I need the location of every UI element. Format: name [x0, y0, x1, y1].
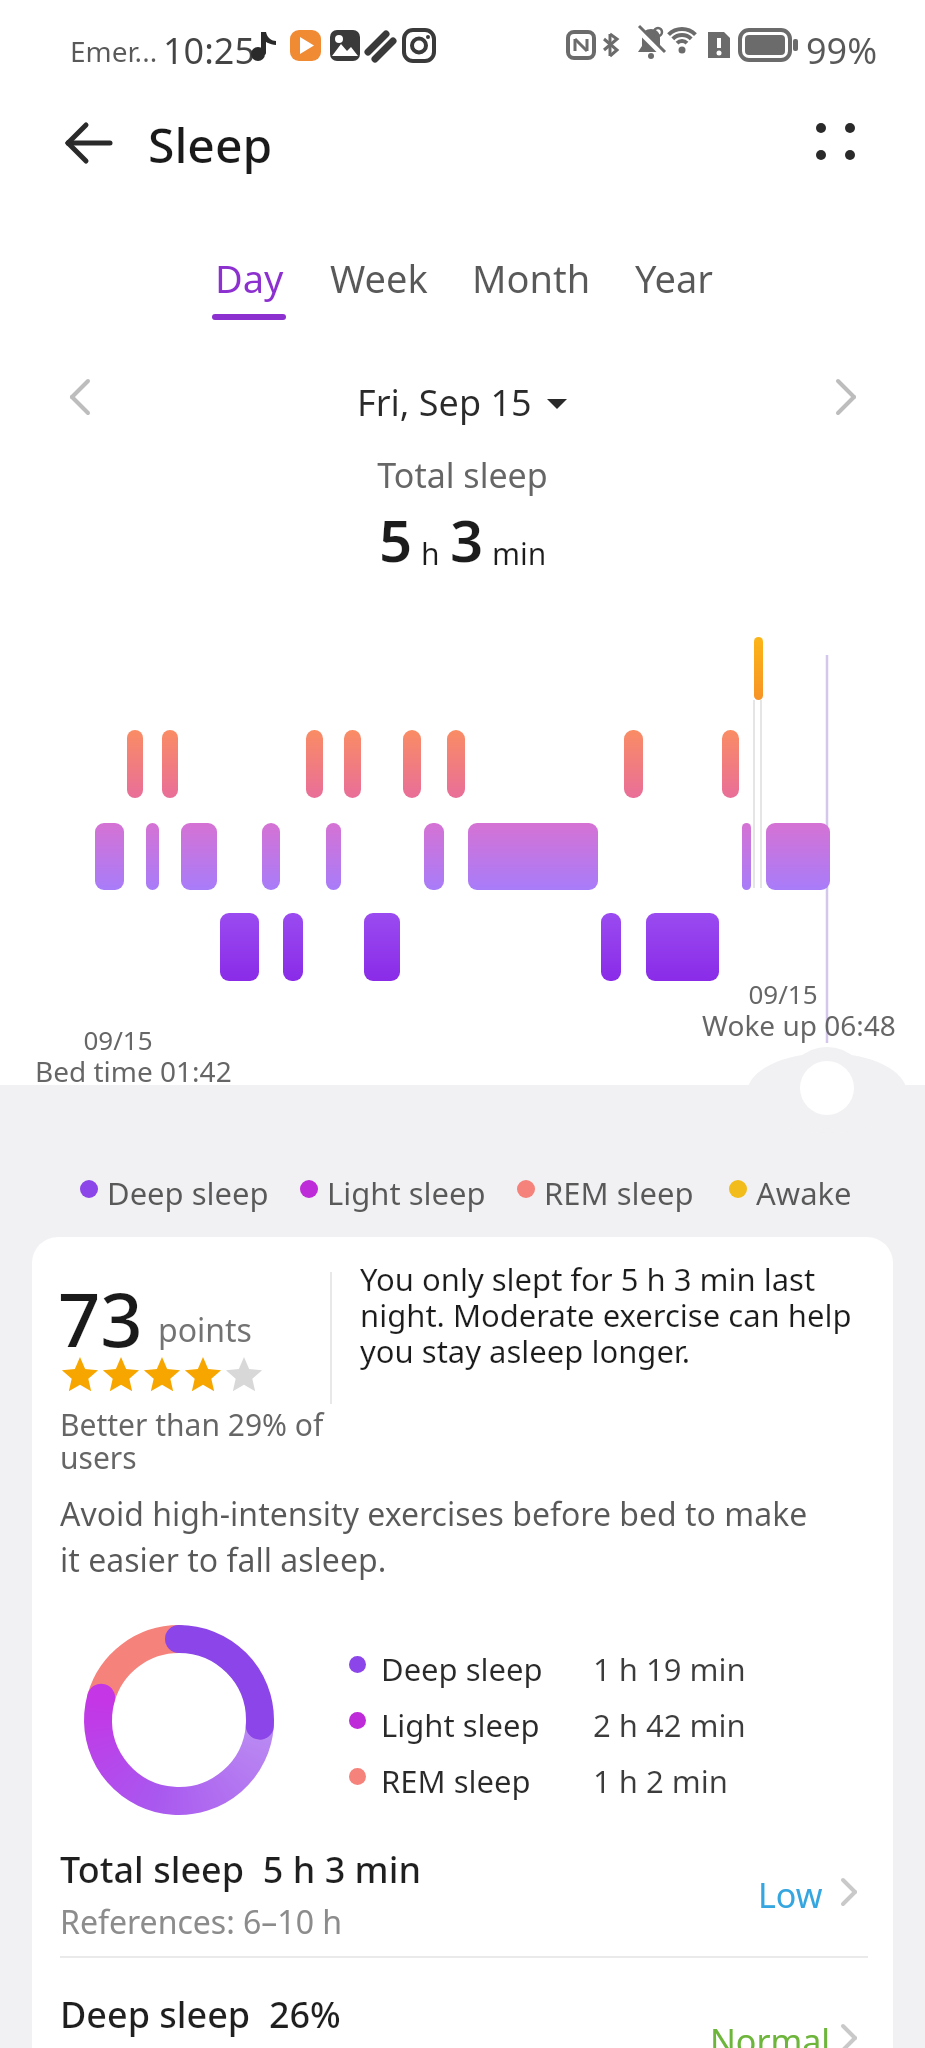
button[interactable]: [40, 1840, 885, 1950]
staticText: Emer...: [70, 32, 158, 70]
staticText: 2 h 42 min: [593, 1704, 746, 1746]
staticText: Avoid high-intensity exercises before be…: [60, 1492, 808, 1581]
button[interactable]: [40, 1975, 885, 2048]
button[interactable]: Day: [212, 252, 286, 320]
staticText: 1 h 2 min: [593, 1760, 728, 1802]
staticText: You only slept for 5 h 3 min last night.…: [360, 1258, 852, 1372]
staticText: 99%: [806, 26, 878, 75]
staticText: h: [421, 533, 440, 574]
button[interactable]: [800, 108, 872, 180]
staticText: Awake: [756, 1172, 852, 1214]
staticText: Light sleep: [327, 1172, 486, 1214]
staticText: Woke up 06:48: [702, 1006, 896, 1044]
button[interactable]: [822, 375, 866, 419]
staticText: 10:25: [163, 26, 256, 75]
staticText: Fri, Sep 15: [357, 378, 532, 427]
staticText: 3: [450, 500, 484, 579]
staticText: points: [158, 1308, 252, 1352]
button[interactable]: Fri, Sep 15: [0, 378, 925, 427]
staticText: Low: [758, 1872, 823, 1918]
staticText: REM sleep: [544, 1172, 694, 1214]
button[interactable]: [48, 103, 128, 183]
staticText: 09/15: [700, 976, 866, 1011]
staticText: Deep sleep: [381, 1648, 543, 1690]
staticText: Total sleep: [0, 452, 925, 498]
staticText: Deep sleep 26%: [60, 1990, 341, 2039]
staticText: Total sleep 5 h 3 min: [60, 1845, 421, 1894]
staticText: 5: [379, 500, 413, 579]
staticText: Deep sleep: [107, 1172, 269, 1214]
staticText: Bed time 01:42: [35, 1052, 232, 1090]
staticText: 1 h 19 min: [593, 1648, 746, 1690]
staticText: REM sleep: [381, 1760, 531, 1802]
staticText: min: [492, 533, 547, 574]
button[interactable]: Year: [635, 252, 714, 304]
button[interactable]: Week: [330, 252, 428, 304]
staticText: Day: [215, 252, 284, 304]
staticText: 73: [58, 1268, 143, 1369]
staticText: References: 6–10 h: [60, 1900, 343, 1944]
staticText: Sleep: [148, 112, 273, 177]
button[interactable]: Month: [472, 252, 591, 304]
staticText: Light sleep: [381, 1704, 540, 1746]
staticText: Better than 29% of users: [60, 1404, 324, 1478]
button[interactable]: [60, 375, 104, 419]
staticText: 09/15: [35, 1022, 201, 1057]
staticText: Normal: [710, 2018, 831, 2048]
